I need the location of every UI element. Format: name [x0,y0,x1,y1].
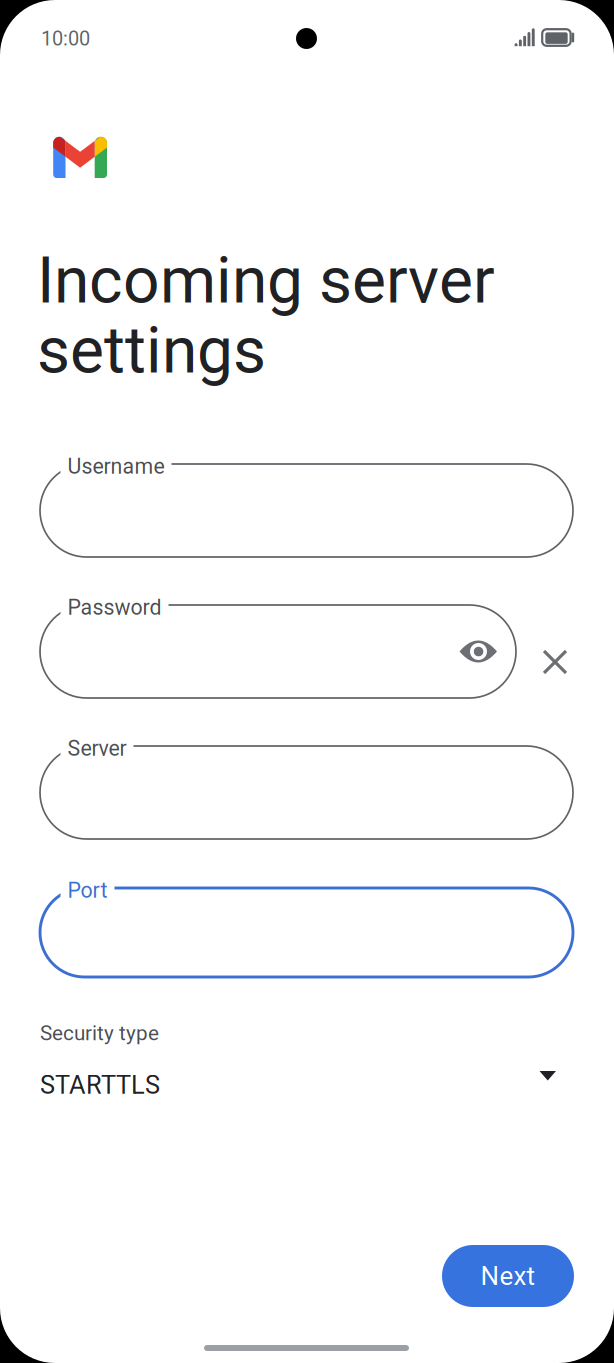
staticText: Next [480,1261,535,1291]
staticText: Username [67,454,164,479]
button[interactable]: Show password [0,0,614,1363]
staticText: Incoming server [37,243,495,318]
staticText: settings [37,313,266,388]
staticText: Port [67,878,107,903]
staticText: Password [67,595,161,620]
staticText: Security type [40,1021,159,1045]
button[interactable]: STARTTLS [0,0,533,28]
button[interactable]: Clear [0,0,614,1363]
button[interactable]: Next [0,0,132,62]
staticText: STARTTLS [40,1070,160,1100]
staticText: 10:00 [41,27,90,50]
staticText: Server [67,736,126,761]
